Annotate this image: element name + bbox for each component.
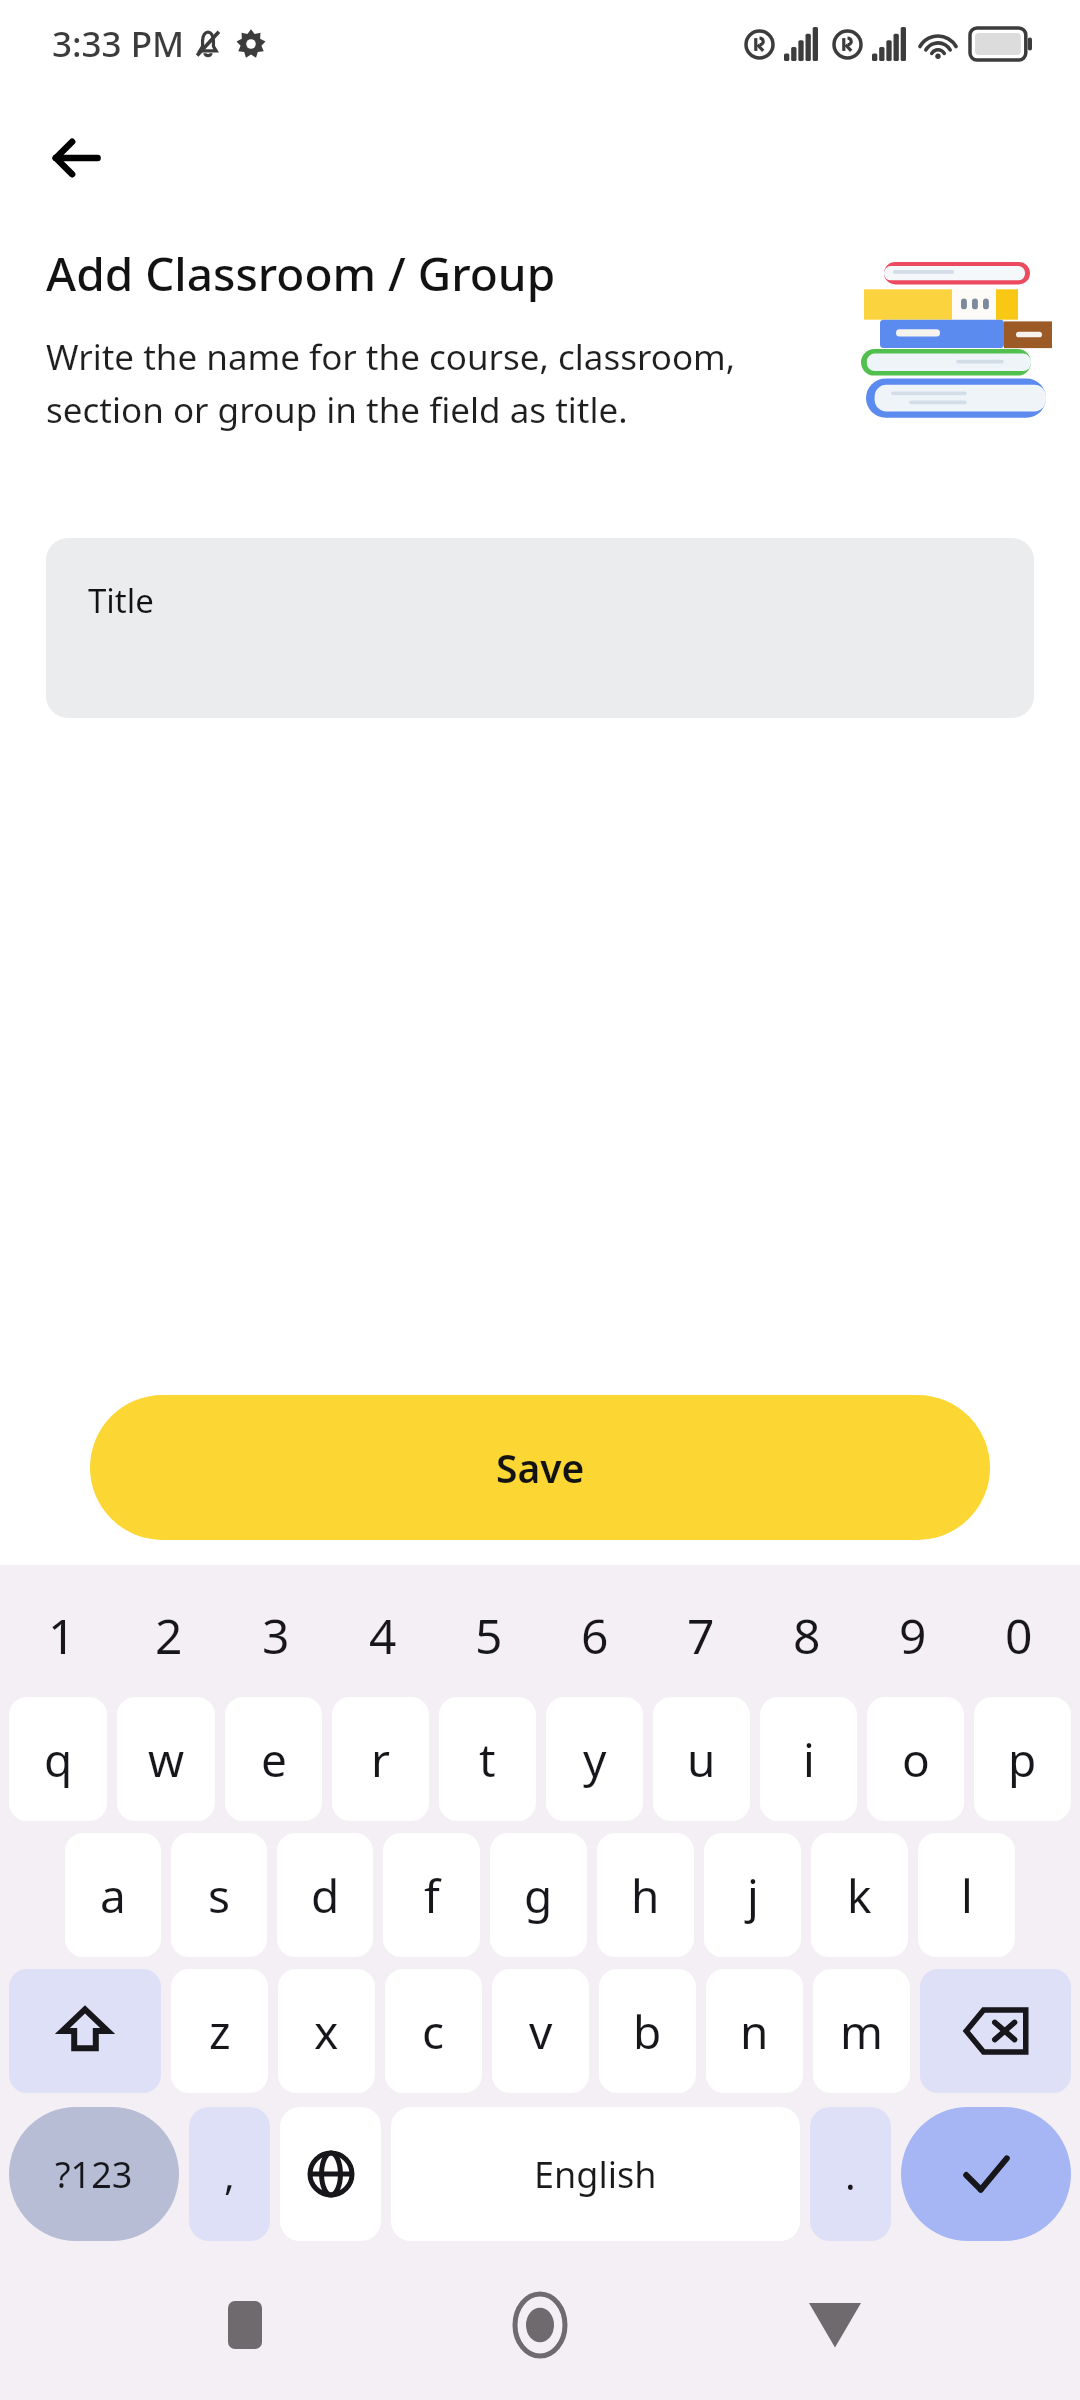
staticText: l (961, 1864, 973, 1927)
button[interactable]: k (811, 1833, 908, 1957)
button[interactable]: 4 (329, 1579, 436, 1691)
staticText: , (224, 2147, 235, 2201)
button[interactable]: p (974, 1697, 1071, 1821)
button[interactable]: . (810, 2107, 891, 2241)
button[interactable]: d (277, 1833, 373, 1957)
button[interactable]: t (439, 1697, 536, 1821)
staticText: 4 (369, 1603, 397, 1668)
button[interactable]: 2 (115, 1579, 222, 1691)
staticText: y (583, 1728, 607, 1791)
button[interactable]: o (867, 1697, 964, 1821)
staticText: h (631, 1864, 660, 1927)
staticText: u (687, 1728, 716, 1791)
staticText: 2 (155, 1603, 183, 1668)
button[interactable]: Recents (195, 2275, 295, 2375)
staticText: 7 (687, 1603, 715, 1668)
button[interactable]: English (391, 2107, 800, 2241)
button[interactable]: n (706, 1969, 803, 2093)
button[interactable]: x (278, 1969, 375, 2093)
staticText: n (740, 2000, 769, 2063)
staticText: Write the name for the course, classroom… (46, 333, 842, 433)
button[interactable]: Backspace (920, 1969, 1071, 2093)
button[interactable]: Title (46, 538, 1034, 718)
button[interactable]: 1 (8, 1579, 115, 1691)
staticText: t (479, 1728, 496, 1791)
button[interactable]: Save (90, 1395, 990, 1540)
button[interactable]: c (385, 1969, 482, 2093)
staticText: . (845, 2147, 856, 2201)
button[interactable]: f (383, 1833, 480, 1957)
staticText: 6 (581, 1603, 609, 1668)
staticText: b (633, 2000, 662, 2063)
button[interactable]: 7 (648, 1579, 754, 1691)
button[interactable]: u (653, 1697, 750, 1821)
button[interactable]: l (918, 1833, 1015, 1957)
staticText: English (534, 2150, 657, 2199)
button[interactable]: a (65, 1833, 161, 1957)
button[interactable]: q (9, 1697, 107, 1821)
staticText: a (100, 1864, 126, 1927)
staticText: x (314, 2000, 339, 2063)
button[interactable]: b (599, 1969, 696, 2093)
staticText: w (148, 1728, 185, 1791)
staticText: r (371, 1728, 390, 1791)
staticText: d (311, 1864, 340, 1927)
staticText: s (208, 1864, 231, 1927)
staticText: 0 (1005, 1603, 1033, 1668)
staticText: 3:33 PM (52, 20, 185, 68)
staticText: q (44, 1728, 73, 1791)
button[interactable]: 0 (966, 1579, 1072, 1691)
staticText: c (422, 2000, 445, 2063)
button[interactable]: m (813, 1969, 910, 2093)
staticText: p (1008, 1728, 1037, 1791)
staticText: 1 (48, 1603, 76, 1668)
button[interactable]: Home (490, 2275, 590, 2375)
button[interactable]: 6 (542, 1579, 648, 1691)
button[interactable]: i (760, 1697, 857, 1821)
button[interactable]: , (189, 2107, 270, 2241)
button[interactable]: Back (28, 110, 124, 206)
button[interactable]: Shift (9, 1969, 161, 2093)
staticText: j (747, 1864, 759, 1927)
staticText: i (803, 1728, 815, 1791)
staticText: f (424, 1864, 440, 1927)
staticText: e (261, 1728, 287, 1791)
staticText: 5 (475, 1603, 503, 1668)
button[interactable]: Enter (901, 2107, 1071, 2241)
button[interactable]: h (597, 1833, 694, 1957)
staticText: k (847, 1864, 872, 1927)
staticText: o (902, 1728, 930, 1791)
staticText: 3 (262, 1603, 290, 1668)
button[interactable]: y (546, 1697, 643, 1821)
staticText: z (209, 2000, 231, 2063)
button[interactable]: w (117, 1697, 215, 1821)
button[interactable]: 5 (436, 1579, 542, 1691)
button[interactable]: z (171, 1969, 268, 2093)
button[interactable]: 3 (222, 1579, 329, 1691)
button[interactable]: v (492, 1969, 589, 2093)
button[interactable]: Change language (280, 2107, 381, 2241)
button[interactable]: g (490, 1833, 587, 1957)
staticText: m (840, 2000, 884, 2063)
button[interactable]: j (704, 1833, 801, 1957)
button[interactable]: ?123 (9, 2107, 179, 2241)
button[interactable]: Hide keyboard (785, 2275, 885, 2375)
button[interactable]: 8 (754, 1579, 860, 1691)
staticText: Save (496, 1441, 585, 1494)
button[interactable]: 9 (860, 1579, 966, 1691)
staticText: 9 (899, 1603, 927, 1668)
button[interactable]: r (332, 1697, 429, 1821)
staticText: v (529, 2000, 553, 2063)
button[interactable]: e (225, 1697, 322, 1821)
staticText: g (524, 1864, 553, 1927)
staticText: 8 (793, 1603, 821, 1668)
staticText: Add Classroom / Group (46, 242, 556, 305)
staticText: Title (88, 578, 154, 623)
staticText: ?123 (55, 2150, 133, 2199)
button[interactable]: s (171, 1833, 267, 1957)
